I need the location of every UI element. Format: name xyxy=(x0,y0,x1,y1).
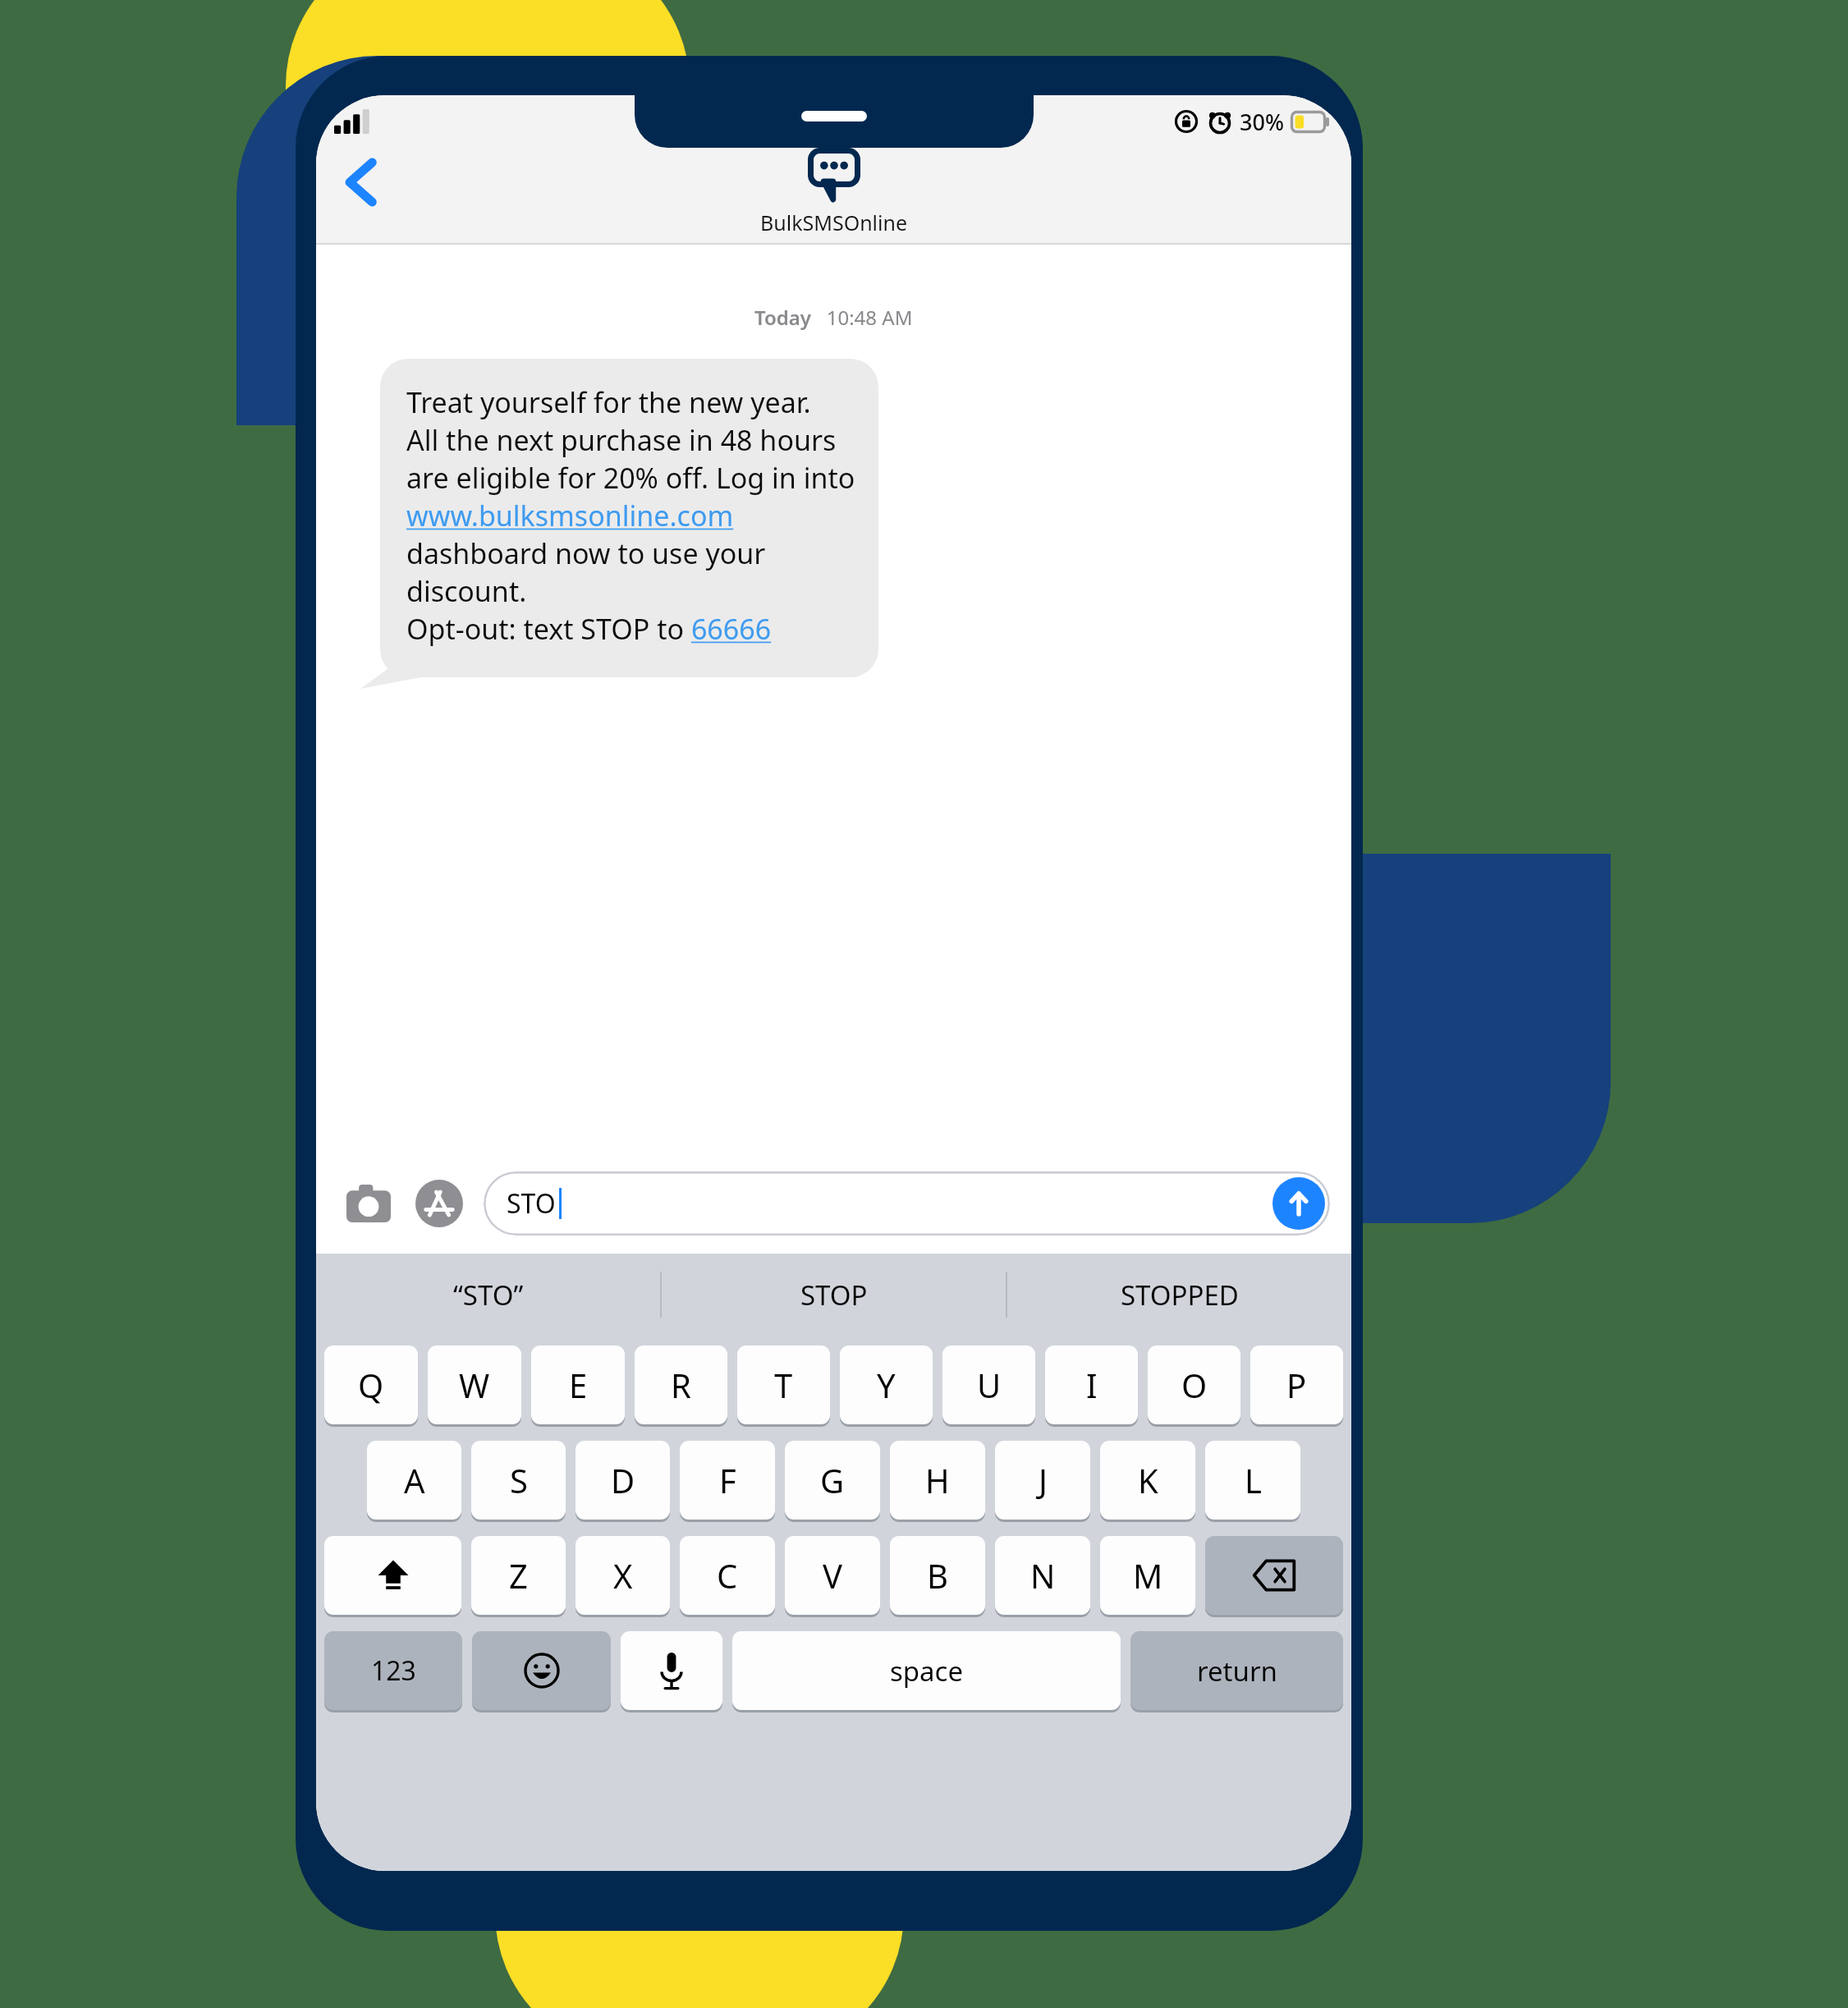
staticText: F xyxy=(719,1458,736,1502)
staticText: O xyxy=(1181,1363,1208,1407)
staticText: M xyxy=(1133,1553,1163,1598)
button[interactable]: X xyxy=(575,1536,670,1615)
button[interactable]: D xyxy=(575,1441,670,1520)
staticText: “STO” xyxy=(453,1277,524,1313)
button[interactable]: Backspace xyxy=(1205,1536,1343,1615)
staticText: return xyxy=(1197,1653,1277,1689)
staticText: K xyxy=(1138,1458,1158,1502)
staticText: R xyxy=(671,1363,691,1407)
button[interactable]: Send xyxy=(1273,1177,1325,1230)
staticText: X xyxy=(613,1553,633,1598)
staticText: Q xyxy=(358,1363,384,1407)
staticText: A xyxy=(404,1458,425,1502)
button[interactable]: Treat yourself for the new year. All the… xyxy=(380,359,878,677)
button[interactable]: Emoji xyxy=(472,1631,611,1710)
button[interactable]: STOP xyxy=(662,1254,1006,1336)
staticText: J xyxy=(1039,1458,1048,1502)
staticText: B xyxy=(927,1553,948,1598)
button[interactable]: BulkSMSOnline xyxy=(760,148,908,236)
staticText: D xyxy=(611,1458,635,1502)
button[interactable]: G xyxy=(785,1441,880,1520)
staticText: Today 10:48 AM xyxy=(754,304,913,331)
button[interactable]: “STO” xyxy=(316,1254,660,1336)
button[interactable]: I xyxy=(1045,1346,1138,1424)
button[interactable]: M xyxy=(1100,1536,1195,1615)
button[interactable]: U xyxy=(942,1346,1035,1424)
button[interactable]: STOPPED xyxy=(1007,1254,1351,1336)
button[interactable]: Shift xyxy=(324,1536,461,1615)
button[interactable]: B xyxy=(890,1536,985,1615)
staticText: W xyxy=(459,1363,490,1407)
staticText: Y xyxy=(877,1363,896,1407)
button[interactable]: return xyxy=(1130,1631,1343,1710)
button[interactable]: space xyxy=(732,1631,1121,1710)
button[interactable]: K xyxy=(1100,1441,1195,1520)
staticText: C xyxy=(717,1553,738,1598)
staticText: S xyxy=(510,1458,528,1502)
staticText: Z xyxy=(509,1553,528,1598)
button[interactable]: C xyxy=(680,1536,775,1615)
staticText: BulkSMSOnline xyxy=(760,209,908,236)
button[interactable]: L xyxy=(1205,1441,1300,1520)
button[interactable]: W xyxy=(428,1346,521,1424)
button[interactable]: STO xyxy=(484,1171,1330,1236)
button[interactable]: Camera xyxy=(337,1172,400,1235)
staticText: STOPPED xyxy=(1121,1277,1239,1313)
staticText: space xyxy=(890,1653,964,1689)
button[interactable]: Back xyxy=(331,153,390,212)
staticText: V xyxy=(823,1553,842,1598)
button[interactable]: F xyxy=(680,1441,775,1520)
button[interactable]: T xyxy=(737,1346,830,1424)
staticText: L xyxy=(1245,1458,1262,1502)
button[interactable]: App Store xyxy=(408,1172,470,1235)
button[interactable]: P xyxy=(1250,1346,1343,1424)
button[interactable]: E xyxy=(531,1346,625,1424)
button[interactable]: H xyxy=(890,1441,985,1520)
staticText: 123 xyxy=(371,1653,416,1689)
button[interactable]: 123 xyxy=(324,1631,462,1710)
button[interactable]: Z xyxy=(471,1536,566,1615)
staticText: Treat yourself for the new year. All the… xyxy=(406,383,855,648)
staticText: I xyxy=(1086,1363,1098,1407)
staticText: P xyxy=(1286,1363,1307,1407)
staticText: T xyxy=(774,1363,793,1407)
button[interactable]: J xyxy=(995,1441,1090,1520)
button[interactable]: S xyxy=(471,1441,566,1520)
button[interactable]: Dictation xyxy=(621,1631,722,1710)
staticText: G xyxy=(820,1458,845,1502)
staticText: N xyxy=(1030,1553,1056,1598)
staticText: 30% xyxy=(1240,107,1284,137)
button[interactable]: R xyxy=(635,1346,727,1424)
staticText: STO xyxy=(507,1185,556,1222)
staticText: U xyxy=(977,1363,1002,1407)
button[interactable]: N xyxy=(995,1536,1090,1615)
staticText: STOP xyxy=(800,1277,868,1313)
button[interactable]: O xyxy=(1148,1346,1240,1424)
staticText: E xyxy=(569,1363,588,1407)
staticText: H xyxy=(925,1458,950,1502)
button[interactable]: Y xyxy=(840,1346,933,1424)
button[interactable]: V xyxy=(785,1536,880,1615)
button[interactable]: A xyxy=(367,1441,461,1520)
button[interactable]: Q xyxy=(324,1346,418,1424)
